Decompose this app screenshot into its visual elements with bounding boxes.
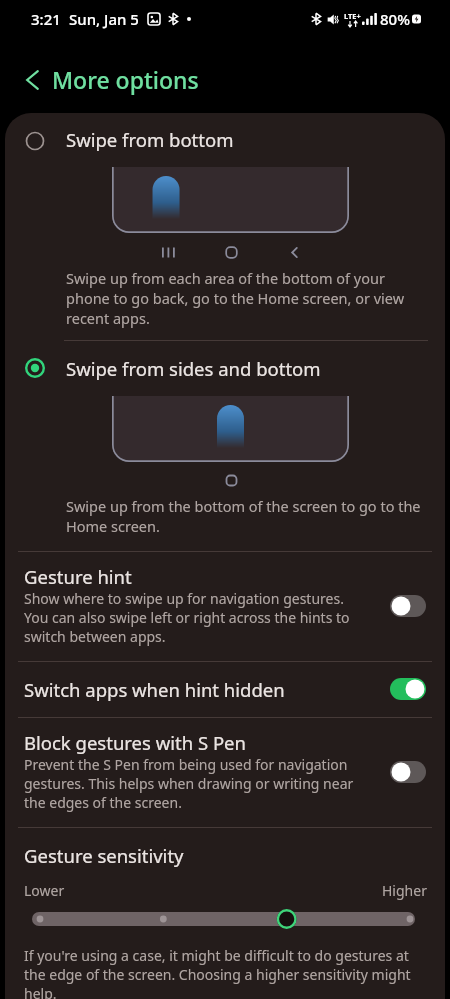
staticText: LTE+ [344,11,361,21]
button[interactable]: On [390,678,426,700]
staticText: Swipe from sides and bottom [66,356,321,381]
staticText: 3:21 [31,9,61,29]
button[interactable]: Gesture sensitivity [27,906,423,932]
staticText: If you're using a case, it might be diff… [24,946,432,999]
staticText: Gesture hint [24,564,132,589]
button[interactable] [5,113,445,340]
staticText: Gesture sensitivity [24,843,184,868]
staticText: Prevent the S Pen from being used for na… [24,755,369,812]
staticText: Swipe up from each area of the bottom of… [66,268,412,328]
staticText: Higher [382,881,427,900]
button[interactable]: Option [19,125,51,157]
staticText: 80% [380,9,410,29]
staticText: Block gestures with S Pen [24,730,246,755]
staticText: Sun, Jan 5 [69,9,139,29]
button[interactable]: Off [390,595,426,617]
button[interactable] [5,552,445,661]
button[interactable]: Selected option [19,352,51,384]
staticText: Lower [24,881,65,900]
button[interactable] [5,662,445,717]
button[interactable]: Back [14,62,50,98]
staticText: Show where to swipe up for navigation ge… [24,589,369,646]
button[interactable] [5,718,445,827]
button[interactable]: Off [390,761,426,783]
staticText: Swipe up from the bottom of the screen t… [66,496,431,536]
button[interactable] [5,341,445,551]
staticText: More options [52,64,199,95]
staticText: Switch apps when hint hidden [24,677,285,702]
staticText: Swipe from bottom [66,127,234,152]
